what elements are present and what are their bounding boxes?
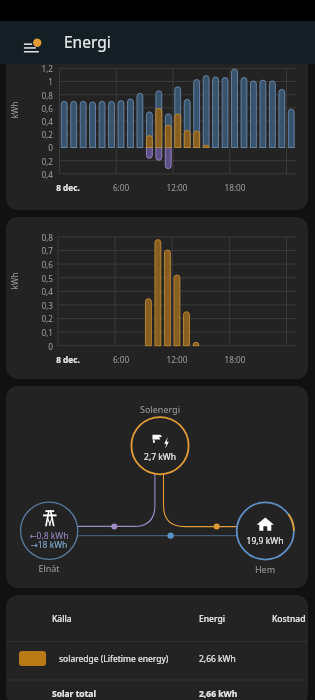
staticText: 0 (6, 142, 53, 153)
staticText: 6:00 (61, 354, 181, 365)
staticText: Hem (205, 563, 308, 575)
staticText: 8 dec. (8, 182, 128, 193)
staticText: 0,3 (6, 300, 53, 311)
staticText: Kostnad (272, 613, 306, 625)
staticText: 0,1 (6, 327, 53, 338)
staticText: kWh (8, 271, 19, 289)
staticText: 0 (6, 341, 53, 352)
staticText: Källa (52, 613, 72, 625)
staticText: 8 dec. (8, 354, 128, 365)
staticText: 12:00 (117, 354, 237, 365)
staticText: kWh (8, 100, 19, 118)
staticText: 19,9 kWh (205, 535, 308, 547)
staticText: Energi (199, 613, 226, 625)
staticText: 2,66 kWh (199, 688, 238, 700)
staticText: →18 kWh (6, 539, 109, 551)
staticText: 6:00 (61, 182, 181, 193)
staticText: 0,5 (6, 273, 53, 284)
staticText: 0,8 (6, 232, 53, 243)
staticText: 0,4 (6, 169, 53, 180)
button[interactable]: Open navigation menu (12, 26, 46, 60)
staticText: 2,66 kWh (199, 653, 236, 665)
staticText: 0,2 (6, 313, 53, 324)
button[interactable]: Källa (6, 595, 308, 700)
staticText: Elnät (6, 562, 109, 574)
staticText: Solar total (52, 688, 96, 700)
staticText: Solenergi (100, 403, 220, 415)
staticText: 12:00 (117, 182, 237, 193)
staticText: 0,7 (6, 245, 53, 256)
staticText: 0,4 (6, 116, 53, 127)
button[interactable]: 0 (6, 217, 308, 379)
staticText: 0,2 (6, 156, 53, 167)
staticText: 1 (6, 76, 53, 87)
staticText: Energi (64, 31, 111, 52)
staticText: 0,6 (6, 103, 53, 114)
staticText: 0,2 (6, 129, 53, 140)
staticText: solaredge (Lifetime energy) (59, 653, 169, 665)
button[interactable]: Solenergi (6, 386, 308, 588)
staticText: ←0,8 kWh (6, 530, 109, 542)
staticText: 18:00 (175, 354, 295, 365)
staticText: 0,4 (6, 286, 53, 297)
staticText: 0,8 (6, 90, 53, 101)
button[interactable]: 1,2 (6, 64, 308, 210)
staticText: 1,2 (6, 64, 53, 74)
staticText: 2,7 kWh (100, 451, 220, 463)
staticText: 18:00 (175, 182, 295, 193)
staticText: 0,6 (6, 259, 53, 270)
